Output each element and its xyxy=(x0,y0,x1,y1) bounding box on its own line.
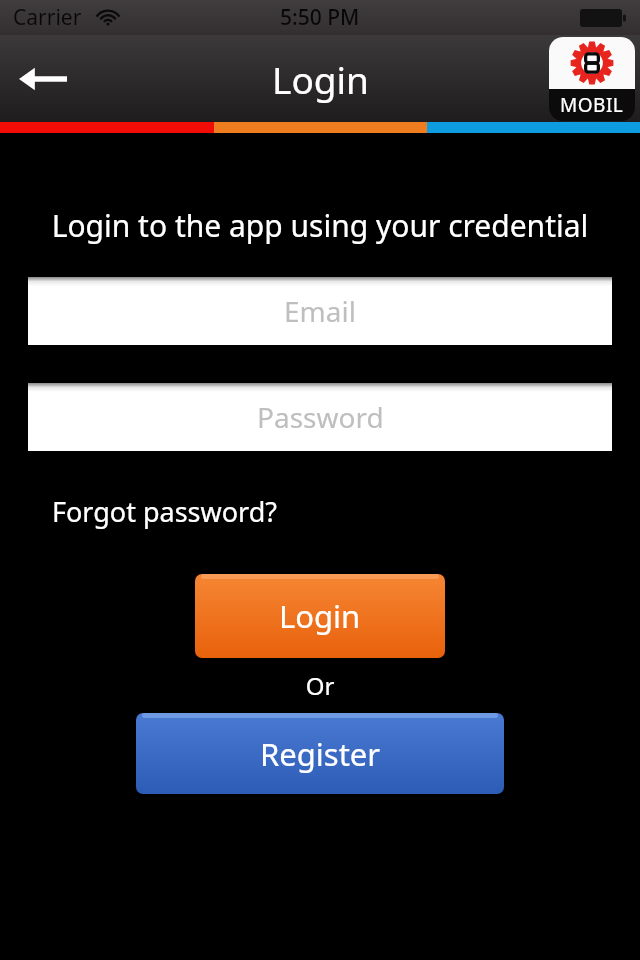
button[interactable]: Forgot password? xyxy=(52,493,278,530)
button[interactable]: Email xyxy=(28,277,612,345)
staticText: Register xyxy=(260,733,381,775)
button[interactable]: Login xyxy=(195,574,445,658)
button[interactable]: Password xyxy=(28,383,612,451)
staticText: Password xyxy=(257,398,384,436)
staticText: Carrier xyxy=(13,3,82,32)
button[interactable]: App logo xyxy=(549,37,635,121)
button[interactable]: Register xyxy=(136,713,504,794)
staticText: Login to the app using your credential xyxy=(0,205,640,246)
staticText: Email xyxy=(284,292,356,330)
staticText: Login xyxy=(279,595,361,637)
staticText: Login xyxy=(272,54,369,104)
staticText: Or xyxy=(0,669,640,702)
button[interactable]: Back xyxy=(12,51,74,107)
staticText: MOBIL xyxy=(560,92,624,118)
staticText: 5:50 PM xyxy=(280,3,360,32)
